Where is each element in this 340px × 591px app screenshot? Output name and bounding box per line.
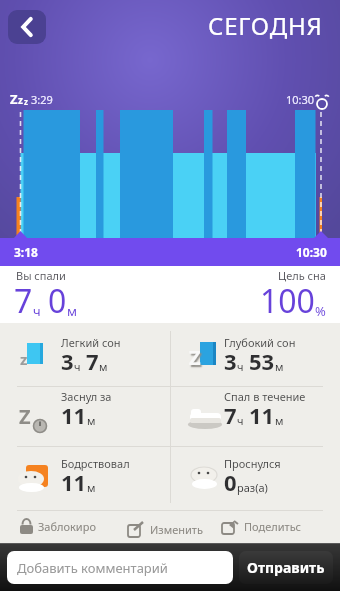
staticText: 53 — [249, 346, 275, 376]
staticText: СЕГОДНЯ — [208, 9, 323, 42]
staticText: м — [67, 302, 77, 320]
staticText: Отправить — [247, 558, 325, 577]
button[interactable]: Заблокиро — [20, 510, 96, 543]
staticText: м — [87, 480, 96, 495]
staticText: ч — [237, 413, 244, 428]
staticText: Z — [189, 344, 201, 371]
staticText: Изменить — [150, 522, 203, 537]
button[interactable] — [170, 386, 340, 446]
staticText: 100 — [260, 279, 315, 323]
staticText: Вы спали — [16, 268, 66, 283]
button[interactable]: Z — [0, 386, 170, 446]
staticText: Легкий сон — [61, 335, 121, 350]
staticText: 11 — [249, 400, 275, 430]
staticText: 3:18 — [14, 244, 38, 260]
staticText: Добавить комментарий — [17, 559, 168, 577]
staticText: Z — [19, 403, 31, 430]
button[interactable] — [170, 446, 340, 510]
button[interactable]: Z — [170, 323, 340, 386]
staticText: Z — [10, 90, 18, 108]
staticText: ч — [74, 359, 81, 374]
staticText: ч — [237, 359, 244, 374]
staticText: 11 — [61, 467, 87, 497]
staticText: Заблокиро — [38, 519, 96, 534]
staticText: 7 — [14, 279, 33, 323]
staticText: 11 — [61, 400, 87, 430]
button[interactable]: Отправить — [239, 551, 333, 584]
staticText: 0 — [48, 279, 67, 323]
staticText: 7 — [86, 346, 99, 376]
staticText: Спал в течение — [224, 389, 306, 404]
staticText: м — [99, 359, 108, 374]
staticText: м — [275, 413, 284, 428]
staticText: Заснул за — [61, 389, 112, 404]
button[interactable]: Изменить — [128, 513, 203, 546]
staticText: м — [87, 413, 96, 428]
staticText: ч — [33, 302, 41, 320]
staticText: z — [20, 349, 28, 369]
staticText: 3 — [61, 346, 74, 376]
staticText: раз(а) — [237, 480, 268, 495]
staticText: Цель сна — [278, 268, 326, 283]
button[interactable] — [8, 10, 46, 44]
staticText: Глубокий сон — [224, 335, 296, 350]
staticText: % — [315, 302, 326, 320]
button[interactable]: Поделитьс — [222, 510, 302, 543]
button[interactable] — [0, 446, 170, 510]
staticText: 0 — [224, 467, 237, 497]
staticText: z — [24, 96, 28, 107]
staticText: 7 — [224, 400, 237, 430]
staticText: Проснулся — [224, 456, 281, 471]
staticText: Поделитьс — [244, 519, 302, 534]
staticText: м — [275, 359, 284, 374]
staticText: 3:29 — [31, 92, 53, 107]
staticText: Бодрствовал — [61, 456, 130, 471]
staticText: 10:30 — [286, 92, 315, 107]
staticText: 10:30 — [296, 244, 327, 260]
staticText: 3 — [224, 346, 237, 376]
staticText: z — [18, 93, 23, 107]
button[interactable]: Добавить комментарий — [7, 551, 233, 584]
button[interactable]: z — [0, 323, 170, 386]
